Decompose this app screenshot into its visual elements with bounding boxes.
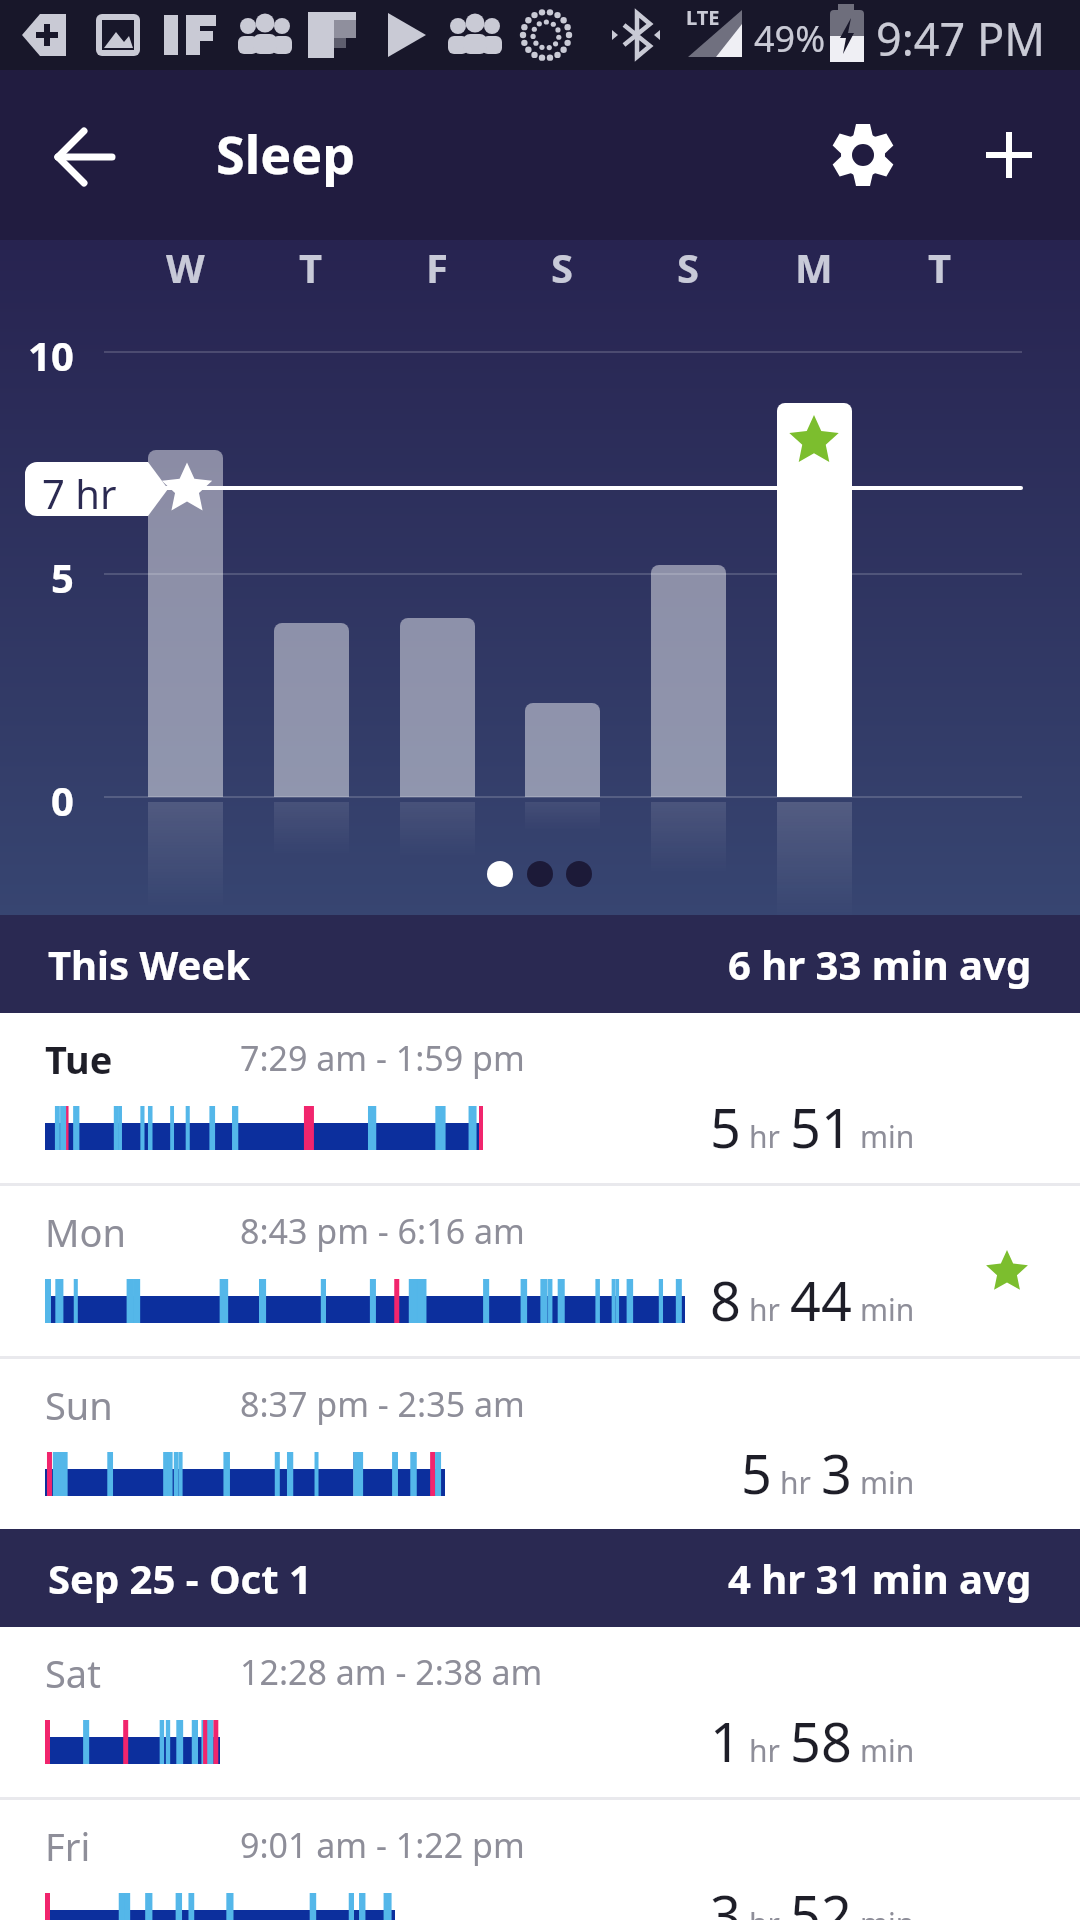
staticText: S	[677, 240, 700, 286]
staticText: S	[551, 240, 574, 286]
staticText: 10	[28, 328, 74, 376]
staticText: 6 hr 33 min avg	[728, 937, 1032, 991]
staticText: hr	[749, 1289, 780, 1330]
staticText: Fri	[45, 1820, 91, 1872]
staticText: 0	[51, 773, 74, 821]
staticText: 3	[710, 1877, 741, 1920]
staticText: 12:28 am - 2:38 am	[240, 1649, 543, 1695]
staticText: F	[426, 240, 448, 286]
staticText: LTE	[686, 4, 720, 31]
staticText: This Week	[48, 937, 250, 991]
staticText: 5	[710, 1090, 741, 1164]
staticText: hr	[749, 1730, 780, 1771]
staticText: hr	[749, 1116, 780, 1157]
staticText: min	[860, 1462, 915, 1503]
staticText: Sun	[45, 1379, 113, 1431]
staticText: 51	[790, 1090, 852, 1164]
staticText: hr	[780, 1462, 811, 1503]
staticText: 9:47 PM	[876, 8, 1046, 69]
staticText: 8:43 pm - 6:16 am	[240, 1208, 525, 1254]
staticText: 49%	[754, 14, 826, 63]
staticText: 8	[710, 1263, 741, 1337]
staticText: Sat	[45, 1647, 101, 1699]
staticText: Sleep	[216, 118, 356, 189]
staticText: 5	[741, 1436, 772, 1510]
staticText: T	[299, 240, 323, 286]
staticText: 4 hr 31 min avg	[728, 1551, 1032, 1605]
staticText: W	[166, 240, 205, 286]
staticText: min	[860, 1116, 915, 1157]
staticText: hr	[749, 1903, 780, 1920]
button[interactable]	[966, 112, 1052, 198]
staticText: 1	[710, 1704, 741, 1778]
staticText: Tue	[45, 1033, 113, 1085]
staticText: 5	[51, 550, 74, 598]
staticText: 58	[790, 1704, 852, 1778]
staticText: 3	[821, 1436, 852, 1510]
staticText: T	[928, 240, 952, 286]
staticText: 9:01 am - 1:22 pm	[240, 1822, 525, 1868]
staticText: 7:29 am - 1:59 pm	[240, 1035, 525, 1081]
button[interactable]: Tue	[0, 1013, 1080, 1183]
staticText: 44	[790, 1263, 852, 1337]
button[interactable]: Sat	[0, 1627, 1080, 1797]
staticText: 7 hr	[42, 466, 117, 520]
staticText: min	[860, 1289, 915, 1330]
button[interactable]	[820, 112, 906, 198]
button[interactable]: Mon	[0, 1186, 1080, 1356]
staticText: min	[860, 1730, 915, 1771]
staticText: Mon	[45, 1206, 126, 1258]
staticText: Sep 25 - Oct 1	[48, 1551, 312, 1605]
button[interactable]: Sun	[0, 1359, 1080, 1529]
button[interactable]	[40, 112, 130, 202]
staticText: 8:37 pm - 2:35 am	[240, 1381, 525, 1427]
staticText: M	[795, 240, 833, 286]
staticText: 52	[790, 1877, 852, 1920]
staticText: min	[860, 1903, 915, 1920]
button[interactable]: Fri	[0, 1800, 1080, 1920]
